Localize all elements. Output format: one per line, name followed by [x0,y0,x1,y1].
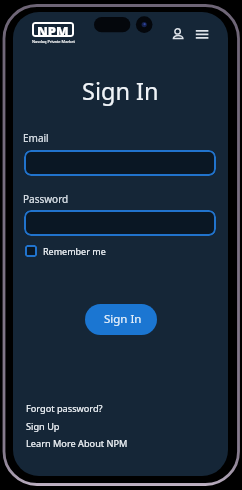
staticText: Nasdaq Private Market [32,39,75,44]
button[interactable]: Sign Up [26,420,60,433]
button[interactable] [24,210,216,236]
button[interactable]: Sign In [85,304,157,335]
staticText: Password [23,192,69,206]
staticText: Email [23,131,49,145]
staticText: Sign In [104,311,142,327]
button[interactable] [195,29,209,41]
staticText: Sign In [82,75,159,107]
button[interactable] [24,150,216,176]
staticText: Remember me [43,245,106,257]
button[interactable]: NPM [32,22,74,37]
button[interactable] [171,25,185,39]
button[interactable]: Forgot password? [26,402,103,415]
staticText: NPM [37,22,69,37]
button[interactable]: Remember me [25,245,106,257]
button[interactable]: Learn More About NPM [26,437,128,450]
